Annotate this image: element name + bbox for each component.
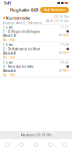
staticText: Kurzstrecke: [6, 15, 30, 20]
button[interactable]: Tab 4: [43, 139, 58, 150]
staticText: Mo–Fr 20:18 Uhr: [46, 19, 69, 23]
staticText: Anfahrt: [59, 33, 69, 37]
staticText: Aktualisiert 20:18 Uhr: [20, 133, 51, 137]
staticText: 1,5 km: [3, 61, 12, 64]
staticText: Anfahrt: [59, 69, 69, 72]
button[interactable]: Tab 1: [0, 139, 14, 150]
staticText: 1,5 km: [3, 43, 12, 47]
staticText: Mo · Halt: [3, 73, 15, 77]
staticText: 9:41: [4, 0, 11, 6]
button[interactable]: Flughafen BER: [0, 6, 39, 14]
button[interactable]: 1,5 km: [0, 42, 72, 60]
staticText: 1 · IC/Regio bis Bologna: [3, 30, 39, 33]
staticText: Gleis 4-8: [3, 52, 16, 55]
button[interactable]: 1,5 km: [0, 60, 72, 77]
staticText: 17:58: [60, 43, 69, 47]
staticText: Anzeige aktuell · Bahnsteig: [3, 21, 42, 25]
staticText: Gleis 1-8: [3, 34, 16, 37]
staticText: Anfahrt: [59, 51, 69, 55]
staticText: Mo · Halt: [3, 38, 15, 42]
button[interactable]: Tab 5: [58, 139, 72, 150]
staticText: 3 · Nord-Süd bis Halle: [3, 65, 34, 69]
button[interactable]: Tab 3: [29, 139, 43, 150]
button[interactable]: 1,5 km: [0, 24, 72, 42]
button[interactable]: Tab 2: [14, 139, 29, 150]
staticText: Gleis 4-6: [3, 69, 16, 73]
staticText: Flughafen BER: [10, 7, 39, 13]
staticText: 17:51: [60, 26, 69, 29]
staticText: Mo · Halt: [3, 56, 15, 59]
staticText: Nach Stationen: [43, 8, 65, 12]
staticText: 2 · Tiefbahnsteig bis Erfurt: [3, 47, 40, 51]
staticText: 1,5 km: [3, 26, 12, 29]
button[interactable]: Nach Stationen: [40, 7, 69, 13]
staticText: 18:04: [60, 61, 69, 64]
staticText: 20:18 Uhr: [54, 15, 69, 19]
